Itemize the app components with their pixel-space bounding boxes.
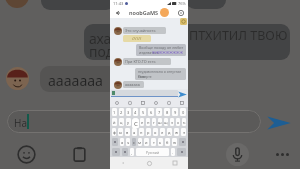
button[interactable]: 7 [156, 108, 162, 116]
button[interactable]: Русский [136, 148, 169, 156]
button[interactable]: 9 [172, 108, 178, 116]
button[interactable]: э [181, 128, 186, 136]
button[interactable] [41, 0, 115, 10]
button[interactable] [84, 24, 290, 60]
button[interactable]: г [152, 118, 156, 126]
button[interactable]: о [153, 128, 158, 136]
button[interactable]: Back [114, 9, 122, 17]
button[interactable]: Keyboard option [149, 99, 162, 107]
button[interactable]: ц [119, 118, 124, 126]
button[interactable]: ааааааа [123, 81, 144, 88]
staticText: 76% [178, 1, 186, 6]
staticText: 5 [142, 110, 145, 115]
button[interactable]: ь [158, 138, 163, 146]
staticText: л [161, 130, 164, 135]
button[interactable]: 3 [126, 108, 131, 116]
button[interactable]: к [133, 118, 138, 126]
button[interactable]: Back [110, 7, 188, 18]
button[interactable] [7, 110, 261, 133]
staticText: р [147, 130, 150, 135]
staticText: ааааааа [125, 82, 140, 87]
button[interactable]: Send message [110, 89, 188, 99]
button[interactable]: 5 [140, 108, 146, 116]
button[interactable]: 4 [133, 108, 138, 116]
button[interactable]: неудивительно я отпустил таки [135, 68, 186, 80]
button[interactable]: д [167, 128, 172, 136]
button[interactable]: Modifier key [122, 148, 128, 156]
button[interactable]: б [165, 138, 170, 146]
button[interactable]: Send message [178, 90, 187, 99]
staticText: ш [158, 120, 162, 125]
button[interactable]: щ [164, 118, 168, 126]
staticText: з [171, 120, 173, 125]
staticText: 3 [127, 110, 130, 115]
button[interactable]: ы [118, 128, 123, 136]
button[interactable]: м [138, 138, 142, 146]
button[interactable]: Clipboard [70, 145, 89, 164]
button[interactable]: Modifier key [179, 138, 186, 146]
button[interactable]: Home [136, 157, 162, 169]
staticText: к [134, 120, 137, 125]
button[interactable]: Keyboard option [175, 99, 188, 107]
staticText: noobGaMS [129, 9, 159, 16]
button[interactable]: 2 [119, 108, 124, 116]
button[interactable]: п [139, 128, 144, 136]
staticText: ЖЖЖЖЖЖЖЖЖ [152, 50, 183, 55]
button[interactable]: Вообще походу он любит [136, 44, 186, 56]
button[interactable]: Keyboard option [123, 99, 136, 107]
button[interactable]: с [132, 138, 136, 146]
button[interactable]: Keyboard option [162, 99, 175, 107]
button[interactable]: , [130, 148, 134, 156]
button[interactable]: и [144, 138, 149, 146]
button[interactable]: More options [272, 146, 292, 163]
button[interactable]: Voice message [228, 145, 247, 164]
button[interactable]: 8 [164, 108, 170, 116]
button[interactable]: т [151, 138, 156, 146]
button[interactable]: в [125, 128, 130, 136]
button[interactable]: Settings [177, 9, 185, 17]
button[interactable]: Это случайность [123, 27, 166, 34]
button[interactable]: ж [174, 128, 179, 136]
button[interactable]: у [126, 118, 131, 126]
button[interactable]: Attachment [180, 18, 187, 25]
button[interactable]: а [132, 128, 137, 136]
button[interactable]: 1 [112, 108, 117, 116]
button[interactable]: Modifier key [112, 138, 118, 146]
button[interactable]: ч [126, 138, 130, 146]
button[interactable] [40, 66, 118, 92]
button[interactable]: Emoji [17, 145, 36, 164]
button[interactable]: е [140, 118, 144, 126]
button[interactable]: Modifier key [112, 148, 120, 156]
staticText: щ [164, 120, 168, 125]
button[interactable]: ш [158, 118, 162, 126]
staticText: б [166, 140, 169, 145]
staticText: аха [89, 29, 112, 48]
button[interactable]: х [176, 118, 180, 126]
staticText: 1 [113, 110, 116, 115]
button[interactable]: Recent apps [162, 157, 188, 169]
staticText: ю [173, 140, 177, 145]
button[interactable]: ю [172, 138, 177, 146]
button[interactable]: Modifier key [177, 148, 186, 156]
button[interactable]: й [112, 118, 117, 126]
button[interactable]: я [120, 138, 124, 146]
button[interactable] [186, 0, 226, 9]
button[interactable]: л [160, 128, 165, 136]
button[interactable]: Send [266, 110, 292, 136]
staticText: ъ [183, 120, 186, 125]
button[interactable]: р [146, 128, 151, 136]
button[interactable]: з [170, 118, 174, 126]
button[interactable]: 6 [148, 108, 154, 116]
button[interactable]: 0 [180, 108, 186, 116]
staticText: ф [113, 130, 116, 135]
button[interactable]: Keyboard option [110, 99, 123, 107]
button[interactable]: Keyboard option [136, 99, 149, 107]
button[interactable]: При КТО-ТО есть мёртвый [123, 58, 171, 65]
button[interactable]: ф [112, 128, 116, 136]
button[interactable]: ъ [182, 118, 186, 126]
button[interactable]: . [171, 148, 175, 156]
button[interactable]: н [146, 118, 150, 126]
staticText: я [121, 140, 124, 145]
button[interactable]: ////// [123, 35, 151, 42]
